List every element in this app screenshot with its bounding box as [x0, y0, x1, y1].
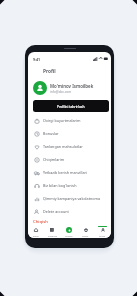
staticText: Yetkazib berish manzillari: [43, 170, 88, 175]
button[interactable]: Profilni tahrirlash: [33, 100, 109, 112]
button[interactable]: Delete account: [33, 205, 111, 218]
staticText: Bosh: [33, 234, 39, 237]
button[interactable]: Tanlangan mahsulotlar: [33, 140, 111, 153]
staticText: Delete account: [43, 209, 69, 214]
staticText: Profilni tahrirlash: [57, 104, 85, 108]
staticText: info@abc.com: [50, 90, 72, 94]
staticText: 9:41: [33, 57, 41, 62]
button[interactable]: Mo'minov Ismoilbek: [33, 81, 111, 95]
staticText: Biz bilan bog'lanish: [43, 183, 77, 188]
button[interactable]: Chiqimlarim: [33, 153, 111, 166]
staticText: Mo'minov Ismoilbek: [50, 83, 94, 89]
button[interactable]: Profile: [94, 225, 111, 238]
button[interactable]: Cart: [77, 225, 94, 238]
staticText: Profil: [99, 234, 106, 237]
staticText: Profil: [43, 68, 56, 75]
staticText: Chiqimlarim: [43, 157, 65, 162]
button[interactable]: Chiqish: [33, 219, 48, 225]
staticText: Savat: [82, 234, 89, 237]
button[interactable]: Biz bilan bog'lanish: [33, 179, 111, 192]
staticText: Oxirgi buyurtmalarim: [43, 118, 81, 123]
staticText: Qimmiy kampaniya vakolatnoma: [43, 196, 100, 201]
button[interactable]: Oxirgi buyurtmalarim: [33, 114, 111, 127]
button[interactable]: Qimmiy kampaniya vakolatnoma: [33, 192, 111, 205]
staticText: Bonuslar: [43, 131, 59, 136]
staticText: Katalog: [48, 234, 57, 237]
staticText: Tanlangan mahsulotlar: [43, 144, 83, 149]
button[interactable]: Promotions: [60, 225, 77, 238]
button[interactable]: Catalog: [44, 225, 60, 238]
button[interactable]: Bonuslar: [33, 127, 111, 140]
button[interactable]: Home: [28, 225, 44, 238]
button[interactable]: Yetkazib berish manzillari: [33, 166, 111, 179]
staticText: Aksiya: [65, 234, 73, 237]
